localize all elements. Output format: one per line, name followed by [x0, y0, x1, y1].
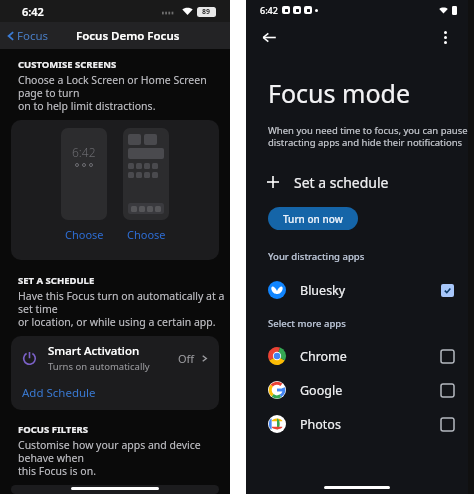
staticText: Smart Activation [48, 343, 140, 359]
staticText: Turns on automatically [48, 360, 150, 373]
staticText: SET A SCHEDULE [18, 274, 95, 287]
button[interactable]: Photos [246, 407, 468, 441]
button[interactable]: Focus [5, 28, 49, 44]
button[interactable]: More options [432, 24, 458, 50]
staticText: Your distracting apps [268, 250, 365, 263]
staticText: Choose [65, 227, 104, 242]
staticText: Focus Demo Focus [76, 28, 180, 44]
staticText: Bluesky [300, 282, 441, 299]
staticText: FOCUS FILTERS [18, 423, 89, 436]
staticText: Choose a Lock Screen or Home Screen page… [18, 73, 230, 113]
button[interactable]: Add Schedule [11, 380, 219, 406]
button[interactable]: Chrome [246, 339, 468, 373]
button[interactable]: Set a schedule [246, 169, 468, 195]
button[interactable]: Bluesky [246, 273, 468, 307]
staticText: Google [300, 382, 441, 399]
staticText: Add Schedule [22, 385, 96, 401]
staticText: Have this Focus turn on automatically at… [18, 289, 230, 329]
staticText: Choose [127, 227, 166, 242]
staticText: Focus [17, 28, 49, 44]
button[interactable]: Turn on now [268, 207, 358, 230]
button[interactable]: Back [256, 24, 282, 50]
button[interactable]: Smart Activation [11, 336, 219, 380]
staticText: Focus mode [268, 76, 411, 110]
staticText: 6:42 [22, 4, 44, 19]
staticText: Turn on now [283, 212, 343, 226]
staticText: Photos [300, 416, 441, 433]
button[interactable]: Choose [127, 227, 166, 242]
staticText: When you need time to focus, you can pau… [268, 124, 468, 149]
staticText: CUSTOMISE SCREENS [18, 58, 117, 71]
button[interactable]: Choose [65, 227, 104, 242]
button[interactable]: Google [246, 373, 468, 407]
staticText: Select more apps [268, 317, 346, 330]
staticText: 89 [202, 7, 211, 17]
staticText: Off [178, 351, 195, 366]
staticText: 6:42 [72, 144, 96, 160]
staticText: 6:42 [260, 4, 278, 16]
staticText: Customise how your apps and device behav… [18, 438, 230, 478]
staticText: Chrome [300, 348, 441, 365]
staticText: Set a schedule [294, 173, 389, 192]
